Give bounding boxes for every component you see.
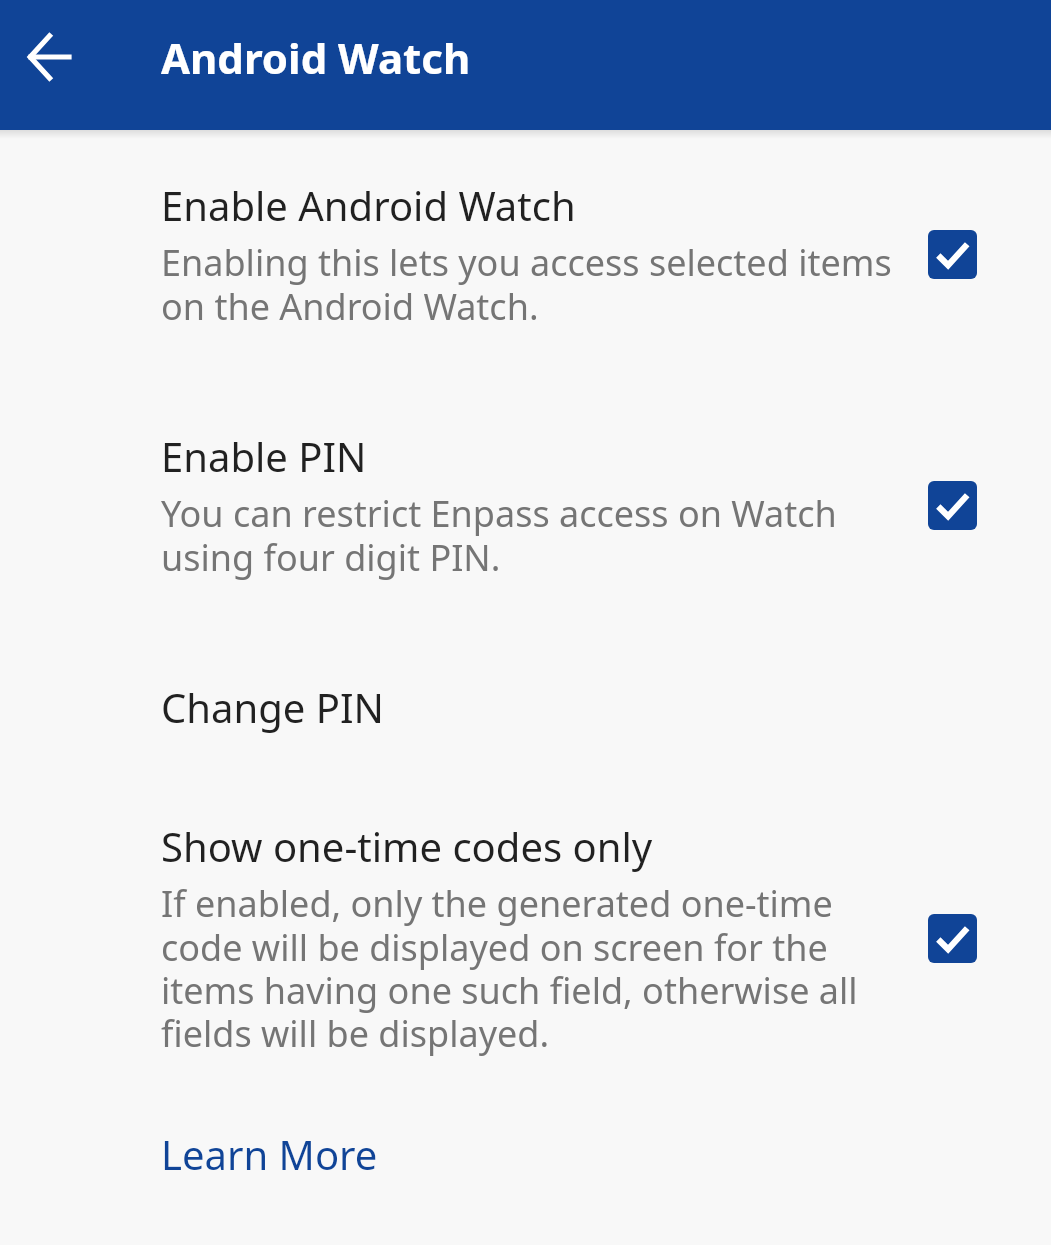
button[interactable]: Enable Android Watch [0,178,1051,330]
button[interactable]: Learn More [161,1127,378,1181]
button[interactable]: Navigate up [8,15,92,99]
button[interactable]: Show one-time codes only [0,819,1051,1057]
button[interactable]: Enable PIN checkbox [913,466,991,544]
button[interactable]: Show one-time codes only checkbox [913,899,991,977]
staticText: Enable Android Watch [161,178,576,232]
button[interactable]: Enable Android Watch checkbox [913,215,991,293]
staticText: Enabling this lets you access selected i… [161,238,892,330]
staticText: If enabled, only the generated one-time … [161,879,858,1057]
button[interactable]: Enable PIN [0,429,1051,581]
staticText: Android Watch [161,29,471,86]
staticText: Show one-time codes only [161,819,653,873]
button[interactable]: Change PIN [0,680,1051,734]
staticText: Enable PIN [161,429,367,483]
staticText: You can restrict Enpass access on Watch … [161,489,837,581]
staticText: Change PIN [161,680,384,734]
staticText: Learn More [161,1127,378,1181]
